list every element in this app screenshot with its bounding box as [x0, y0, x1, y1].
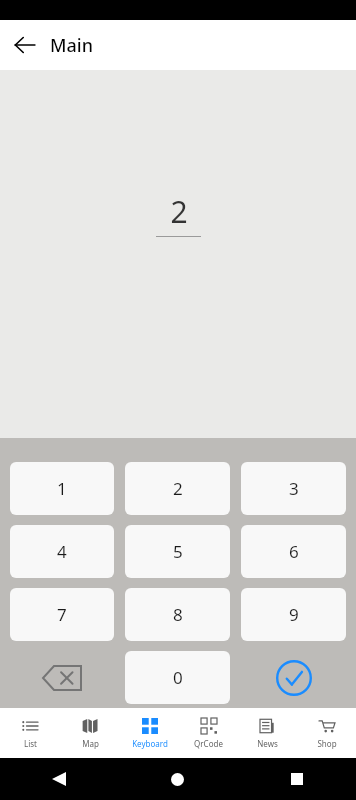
staticText: 7: [57, 603, 67, 626]
staticText: 9: [289, 603, 299, 626]
button[interactable]: List: [0, 708, 60, 758]
staticText: 0: [173, 666, 183, 689]
staticText: Map: [82, 738, 99, 749]
staticText: 5: [173, 540, 183, 563]
staticText: Shop: [317, 738, 337, 749]
button[interactable]: 3: [241, 462, 346, 515]
staticText: 4: [57, 540, 67, 563]
button[interactable]: 8: [125, 588, 230, 641]
button[interactable]: Map: [60, 708, 120, 758]
button[interactable]: Confirm: [241, 651, 346, 704]
staticText: 8: [173, 603, 183, 626]
staticText: 2: [173, 477, 183, 500]
button[interactable]: 9: [241, 588, 346, 641]
button[interactable]: 0: [125, 651, 230, 704]
button[interactable]: 2: [125, 462, 230, 515]
staticText: 6: [289, 540, 299, 563]
button[interactable]: 1: [10, 462, 114, 515]
button[interactable]: Shop: [297, 708, 356, 758]
button[interactable]: News: [238, 708, 297, 758]
button[interactable]: Back: [0, 20, 50, 70]
staticText: List: [24, 738, 37, 749]
button[interactable]: 4: [10, 525, 114, 578]
button[interactable]: QrCode: [179, 708, 238, 758]
button[interactable]: Backspace: [10, 651, 114, 704]
staticText: 1: [57, 477, 67, 500]
staticText: News: [257, 738, 278, 749]
button[interactable]: 7: [10, 588, 114, 641]
staticText: 3: [289, 477, 299, 500]
staticText: Keyboard: [132, 738, 168, 749]
staticText: QrCode: [194, 738, 223, 749]
button[interactable]: Keyboard: [120, 708, 179, 758]
staticText: 2: [170, 191, 188, 232]
staticText: Main: [50, 33, 93, 58]
button[interactable]: 6: [241, 525, 346, 578]
button[interactable]: 5: [125, 525, 230, 578]
